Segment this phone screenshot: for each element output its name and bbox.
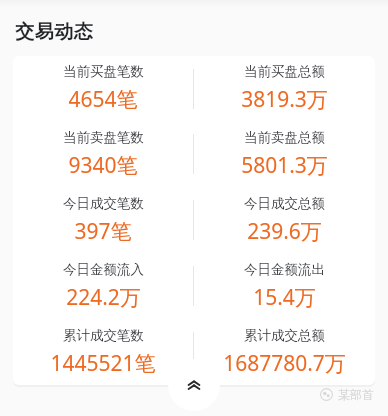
staticText: 5801.3万: [241, 151, 328, 180]
staticText: 当前卖盘总额: [244, 129, 325, 146]
button[interactable]: 累计成交总额: [194, 319, 375, 385]
button[interactable]: 当前卖盘笔数: [13, 121, 193, 187]
staticText: 当前买盘总额: [244, 63, 325, 80]
staticText: 9340笔: [68, 151, 138, 180]
staticText: 15.4万: [253, 283, 316, 312]
staticText: 今日成交笔数: [63, 195, 144, 212]
button[interactable]: 今日成交笔数: [13, 187, 193, 253]
staticText: 今日成交总额: [244, 195, 325, 212]
staticText: 4654笔: [68, 85, 138, 114]
staticText: 1445521笔: [50, 349, 156, 378]
button[interactable]: 当前卖盘总额: [194, 121, 375, 187]
staticText: 累计成交笔数: [63, 327, 144, 344]
staticText: 累计成交总额: [244, 327, 325, 344]
button[interactable]: 当前买盘笔数: [13, 56, 193, 121]
staticText: 1687780.7万: [223, 349, 346, 378]
button[interactable]: 收起: [168, 359, 220, 411]
staticText: 今日金额流出: [244, 261, 325, 278]
staticText: 224.2万: [66, 283, 141, 312]
button[interactable]: 当前买盘总额: [194, 56, 375, 121]
staticText: 今日金额流入: [63, 261, 144, 278]
staticText: 397笔: [74, 217, 132, 246]
staticText: 239.6万: [247, 217, 322, 246]
staticText: 交易动态: [15, 20, 93, 44]
button[interactable]: 今日金额流出: [194, 253, 375, 319]
staticText: 3819.3万: [241, 85, 328, 114]
staticText: 当前买盘笔数: [63, 63, 144, 80]
button[interactable]: 今日成交总额: [194, 187, 375, 253]
staticText: 当前卖盘笔数: [63, 129, 144, 146]
button[interactable]: 今日金额流入: [13, 253, 193, 319]
staticText: 某部首: [338, 387, 374, 402]
button[interactable]: 累计成交笔数: [13, 319, 193, 385]
